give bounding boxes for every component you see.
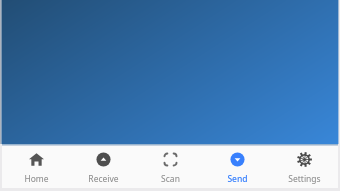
button[interactable]: Home bbox=[2, 146, 70, 188]
staticText: Settings bbox=[288, 173, 321, 185]
button[interactable]: Settings bbox=[271, 146, 338, 188]
staticText: Home bbox=[24, 173, 49, 185]
staticText: Receive bbox=[88, 173, 119, 185]
button[interactable]: Scan bbox=[137, 146, 204, 188]
button[interactable]: Receive bbox=[70, 146, 137, 188]
button[interactable]: Send bbox=[204, 146, 271, 188]
staticText: Scan bbox=[161, 173, 180, 185]
staticText: Send bbox=[227, 173, 248, 185]
